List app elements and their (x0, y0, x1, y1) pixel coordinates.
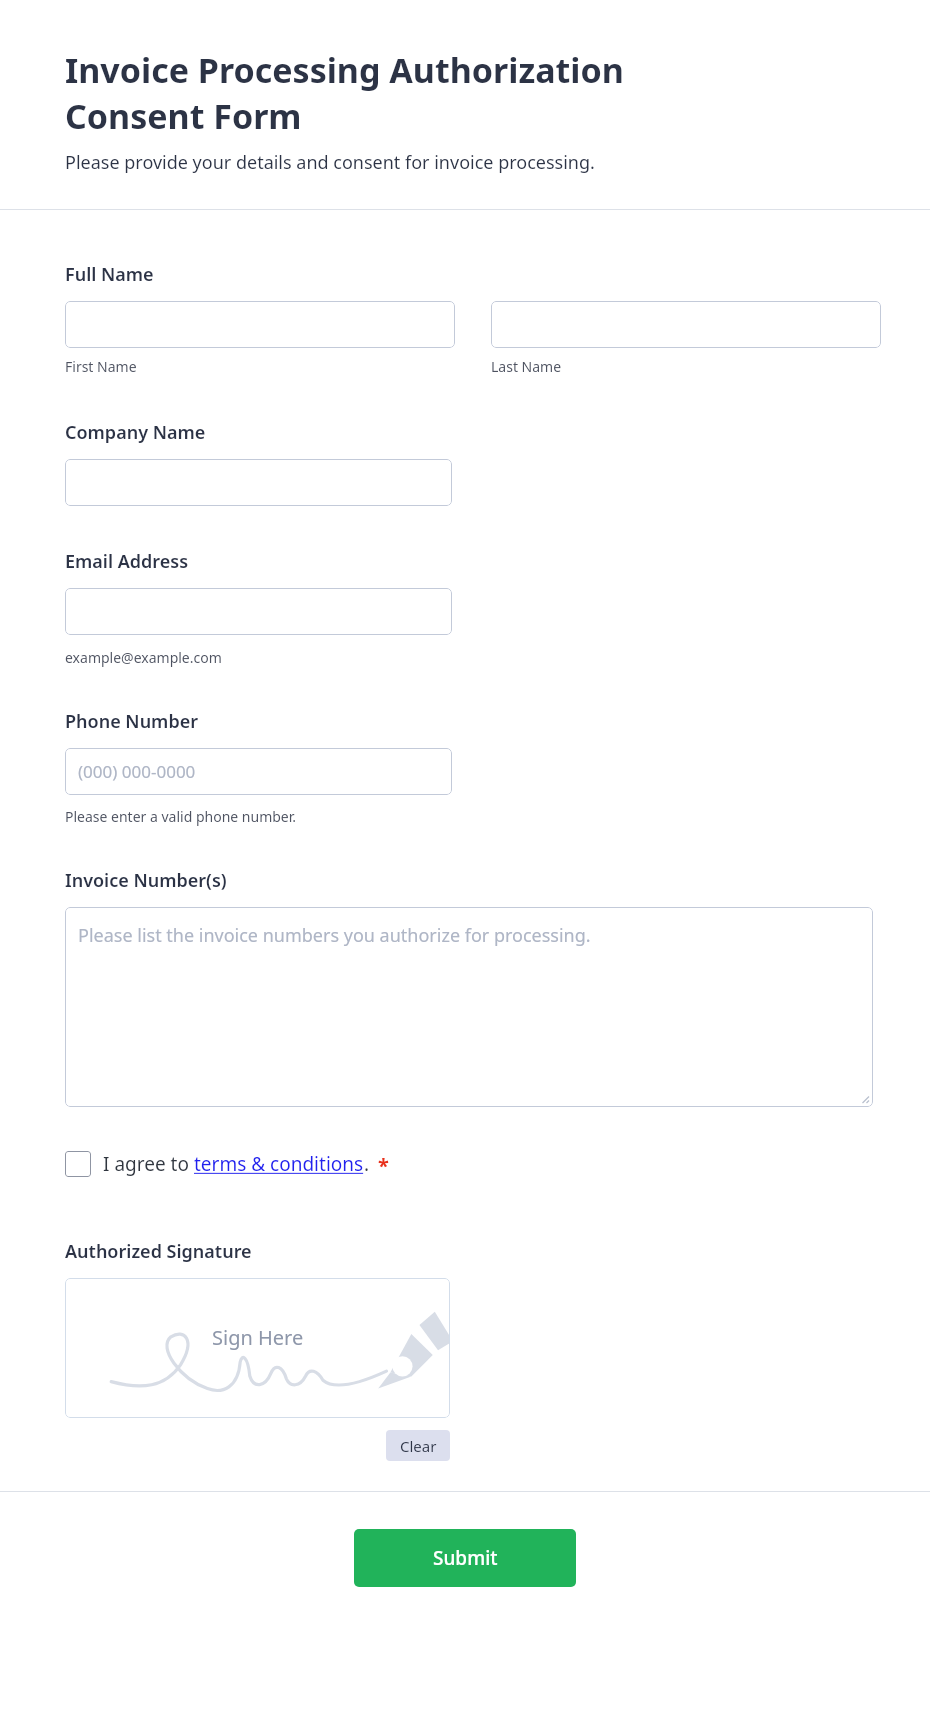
staticText: Authorized Signature (65, 1239, 252, 1264)
staticText: Phone Number (65, 709, 199, 734)
button[interactable] (65, 301, 455, 348)
staticText: Last Name (491, 357, 562, 376)
staticText: Company Name (65, 420, 206, 445)
staticText: First Name (65, 357, 137, 376)
staticText: Email Address (65, 549, 189, 574)
staticText: Please provide your details and consent … (65, 150, 595, 175)
staticText: Please list the invoice numbers you auth… (78, 923, 591, 948)
button[interactable] (65, 459, 452, 506)
staticText: Please enter a valid phone number. (65, 807, 297, 826)
staticText: . (364, 1151, 370, 1177)
staticText: * (378, 1152, 389, 1179)
staticText: Invoice Processing Authorization (65, 47, 624, 93)
button[interactable]: (000) 000-0000 (65, 748, 452, 795)
button[interactable]: Please list the invoice numbers you auth… (65, 907, 873, 1107)
button[interactable]: Signature pad, sign here (65, 1278, 450, 1418)
staticText: example@example.com (65, 648, 222, 667)
button[interactable] (491, 301, 881, 348)
button[interactable] (65, 588, 452, 635)
staticText: Full Name (65, 262, 154, 287)
button[interactable]: terms & conditions (194, 1151, 364, 1177)
staticText: Sign Here (212, 1324, 304, 1351)
button[interactable]: I agree to (65, 1150, 389, 1177)
button[interactable]: Submit (354, 1529, 576, 1587)
staticText: Submit (433, 1545, 498, 1571)
staticText: (000) 000-0000 (78, 760, 196, 783)
staticText: I agree to (103, 1151, 194, 1177)
button[interactable]: Clear (386, 1430, 450, 1461)
staticText: Clear (400, 1436, 437, 1456)
staticText: Invoice Number(s) (65, 868, 227, 893)
staticText: Consent Form (65, 93, 302, 139)
